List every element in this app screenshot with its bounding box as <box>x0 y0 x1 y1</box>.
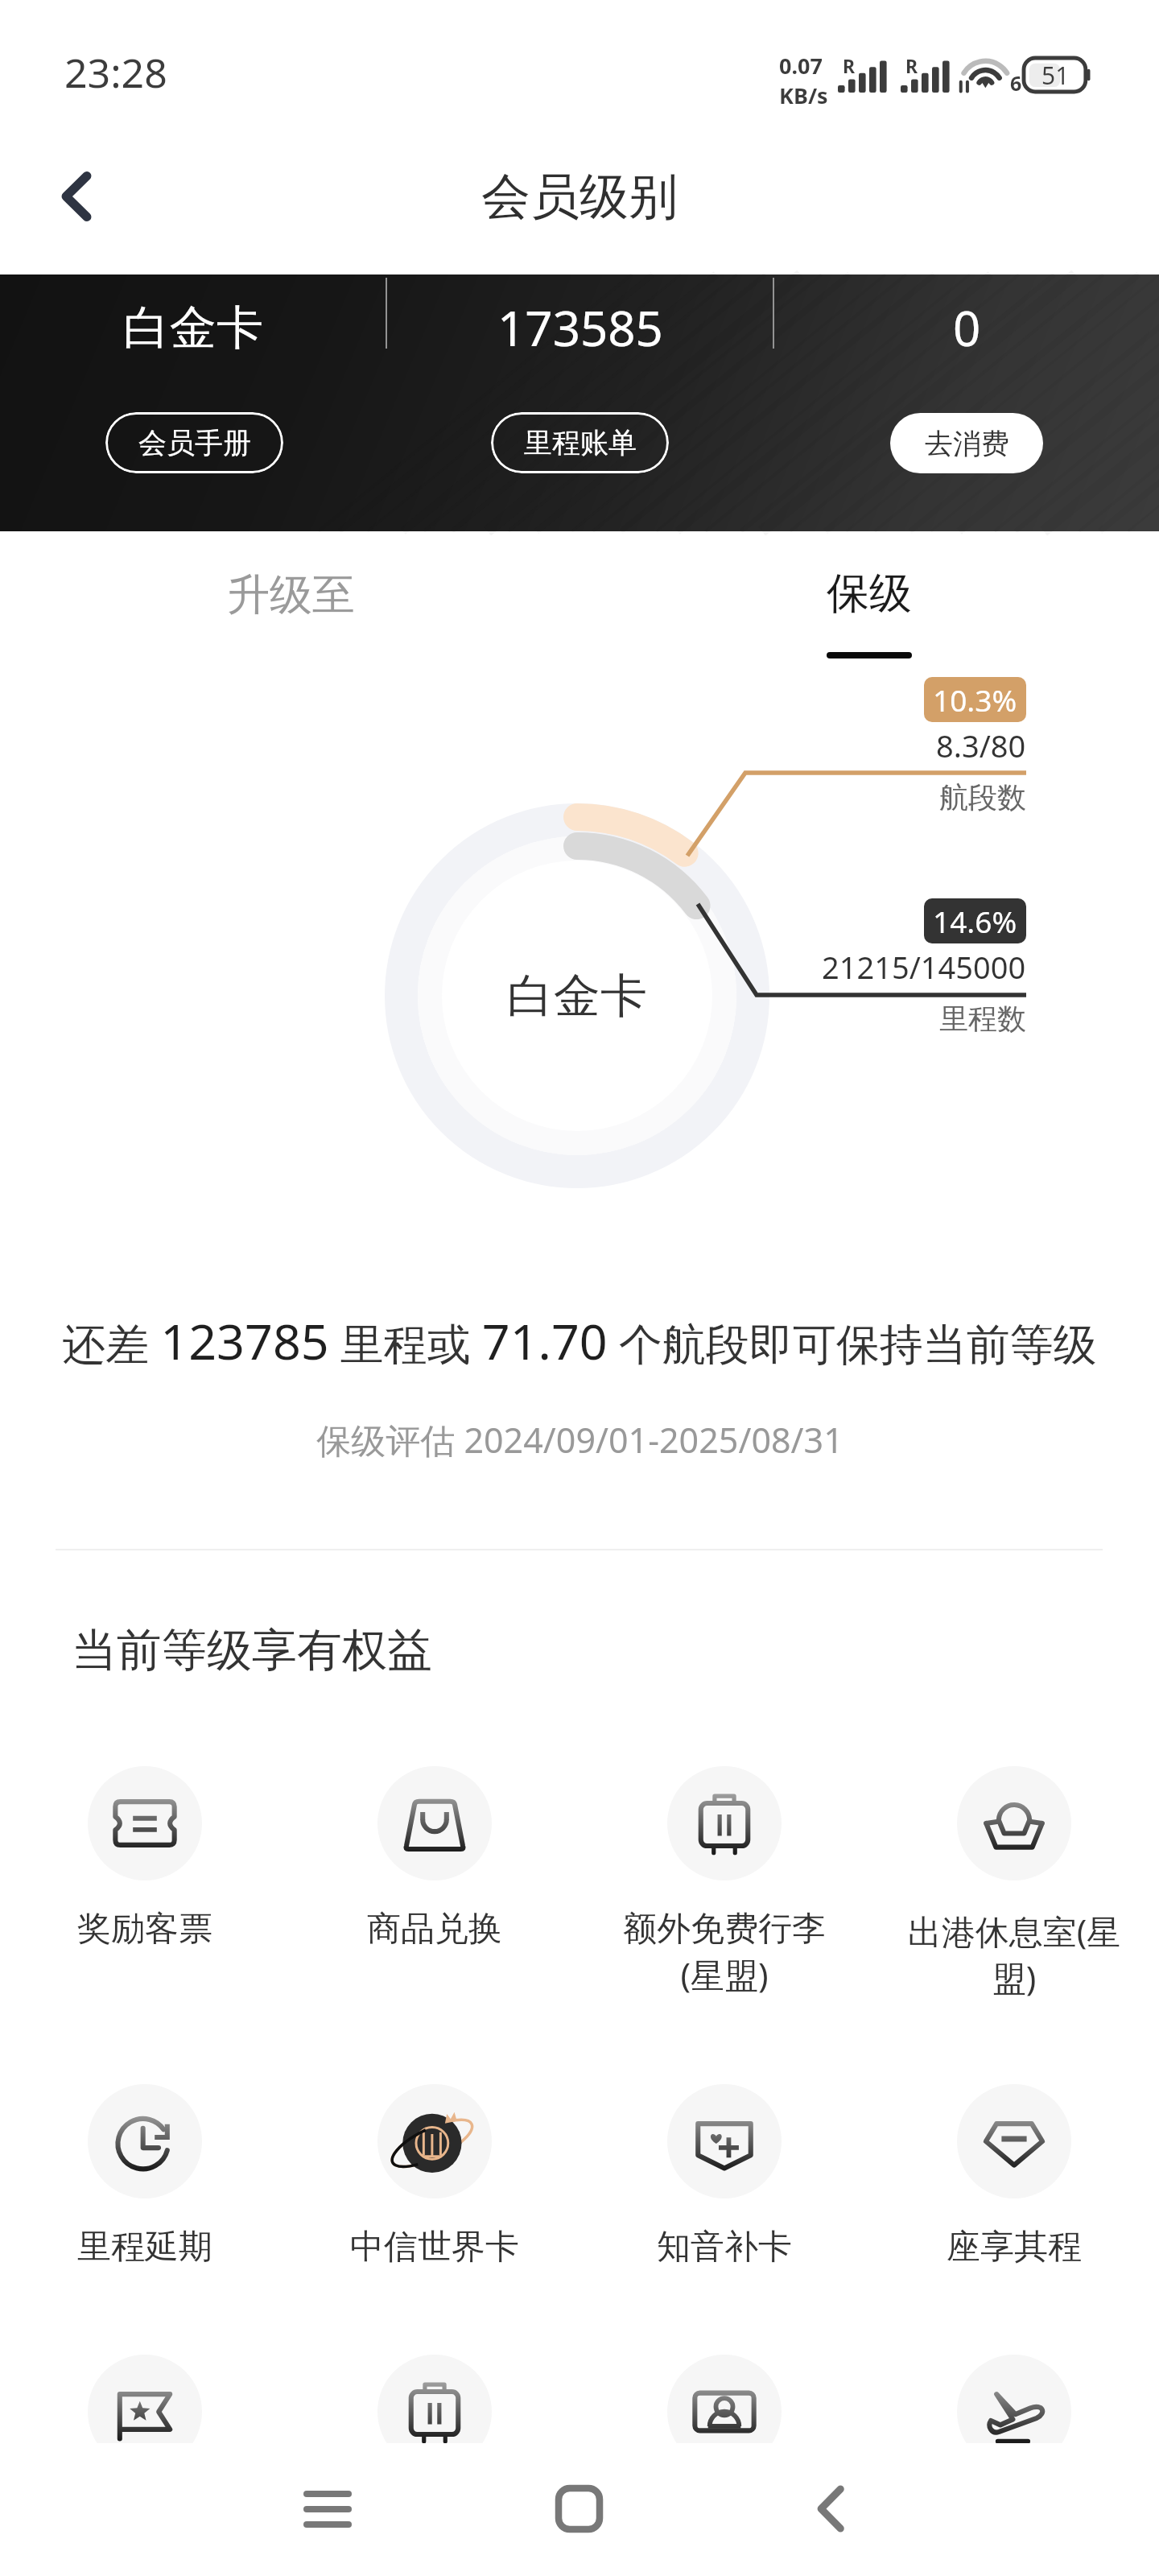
staticText: 10.3% <box>933 679 1017 720</box>
staticText: 出港休息室(星 盟) <box>869 1908 1159 2000</box>
staticText: 额外免费行李 (星盟) <box>579 1908 869 1997</box>
button[interactable]: 里程账单 <box>491 412 669 473</box>
button[interactable]: 保级 <box>724 531 1014 660</box>
button[interactable]: Home <box>522 2443 635 2576</box>
staticText: 还差 123785 里程或 71.70 个航段即可保持当前等级 <box>62 1307 1097 1374</box>
button[interactable]: 商品兑换 <box>290 1766 579 1951</box>
button[interactable]: 知音补卡 <box>579 2084 869 2268</box>
staticText: 升级至 <box>227 568 355 622</box>
staticText: 白金卡 <box>123 299 263 357</box>
staticText: 会员级别 <box>481 166 678 228</box>
button[interactable]: Recent apps <box>271 2443 384 2576</box>
staticText: KB/s <box>779 80 828 110</box>
staticText: 21215/145000 <box>822 946 1026 988</box>
staticText: 保级 <box>827 567 912 621</box>
button[interactable]: 升级至 <box>146 531 435 660</box>
staticText: 6 <box>1010 69 1022 97</box>
button[interactable]: 出港休息室(星 盟) <box>869 1766 1159 2000</box>
button[interactable]: 会员手册 <box>105 412 283 473</box>
staticText: 里程账单 <box>524 425 637 460</box>
staticText: 0.07 <box>779 51 823 80</box>
button[interactable] <box>0 2355 290 2542</box>
staticText: 保级评估 2024/09/01-2025/08/31 <box>316 1416 843 1463</box>
staticText: 会员手册 <box>138 425 251 460</box>
staticText: 去消费 <box>925 426 1009 461</box>
staticText <box>290 2496 579 2542</box>
staticText: 中信世界卡 <box>290 2226 579 2268</box>
staticText: 奖励客票 <box>0 1908 290 1951</box>
staticText: 当前等级享有权益 <box>72 1622 432 1679</box>
staticText: 商品兑换 <box>290 1908 579 1951</box>
button[interactable]: 中信世界卡 <box>290 2084 579 2268</box>
staticText: 里程数 <box>939 1001 1026 1037</box>
staticText: 白金卡 <box>507 967 647 1026</box>
button[interactable] <box>290 2355 579 2542</box>
staticText: 航段数 <box>939 779 1026 815</box>
button[interactable]: 里程延期 <box>0 2084 290 2268</box>
staticText: 里程延期 <box>0 2226 290 2268</box>
staticText: 23:28 <box>64 45 167 100</box>
button[interactable] <box>869 2355 1159 2542</box>
button[interactable]: 座享其程 <box>869 2084 1159 2268</box>
button[interactable] <box>579 2355 869 2542</box>
button[interactable]: Back <box>774 2443 887 2576</box>
staticText: 173585 <box>497 295 663 361</box>
staticText: 51 <box>1041 59 1070 92</box>
staticText: R <box>905 53 918 78</box>
staticText <box>579 2496 869 2542</box>
button[interactable]: Back <box>21 144 126 249</box>
staticText: 8.3/80 <box>936 724 1026 766</box>
staticText: 座享其程 <box>869 2226 1159 2268</box>
staticText: R <box>843 53 856 78</box>
staticText: 0 <box>953 295 981 361</box>
staticText: 14.6% <box>933 901 1017 941</box>
button[interactable]: 奖励客票 <box>0 1766 290 1951</box>
button[interactable]: 去消费 <box>890 413 1043 473</box>
button[interactable]: 额外免费行李 (星盟) <box>579 1766 869 1997</box>
staticText: 知音补卡 <box>579 2226 869 2268</box>
